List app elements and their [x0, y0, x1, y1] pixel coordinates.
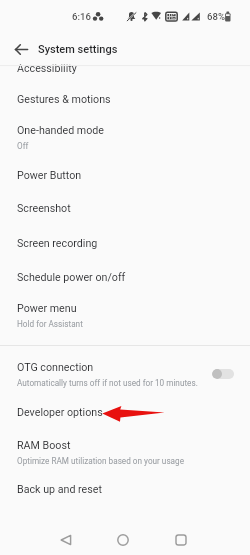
staticText: RAM Boost — [17, 439, 71, 452]
staticText: 6:16 — [72, 11, 91, 22]
staticText: Screenshot — [17, 202, 71, 215]
staticText: System settings — [38, 43, 118, 56]
button[interactable]: Gestures & motions — [0, 93, 250, 106]
button[interactable]: Developer options — [0, 406, 250, 419]
staticText: Automatically turns off if not used for … — [17, 378, 198, 388]
button[interactable]: RAM Boost — [0, 439, 250, 466]
staticText: Schedule power on/off — [17, 271, 126, 284]
staticText: Optimize RAM utilization based on your u… — [17, 456, 185, 466]
button[interactable]: Schedule power on/off — [0, 271, 250, 284]
staticText: Screen recording — [17, 237, 98, 250]
button[interactable]: Screenshot — [0, 202, 250, 215]
button[interactable]: Back — [52, 526, 80, 554]
button[interactable]: Screen recording — [0, 237, 250, 250]
staticText: Off — [17, 141, 29, 151]
button[interactable]: Power menu — [0, 302, 250, 329]
button[interactable]: Recent apps — [167, 526, 195, 554]
button[interactable]: Power Button — [0, 169, 250, 182]
staticText: 68% — [207, 11, 225, 22]
staticText: Developer options — [17, 406, 103, 419]
staticText: Accessibility — [17, 62, 77, 75]
staticText: OTG connection — [17, 361, 94, 374]
button[interactable]: One-handed mode — [0, 124, 250, 151]
button[interactable]: OTG connection — [0, 357, 250, 391]
staticText: Power Button — [17, 169, 82, 182]
staticText: Back up and reset — [17, 483, 102, 496]
staticText: Hold for Assistant — [17, 319, 83, 329]
button[interactable]: Accessibility — [0, 62, 250, 75]
button[interactable]: Back up and reset — [0, 483, 250, 496]
button[interactable]: Home — [109, 526, 137, 554]
staticText: Power menu — [17, 302, 77, 315]
staticText: Gestures & motions — [17, 93, 111, 106]
staticText: One-handed mode — [17, 124, 105, 137]
button[interactable]: Navigate up — [6, 34, 36, 64]
